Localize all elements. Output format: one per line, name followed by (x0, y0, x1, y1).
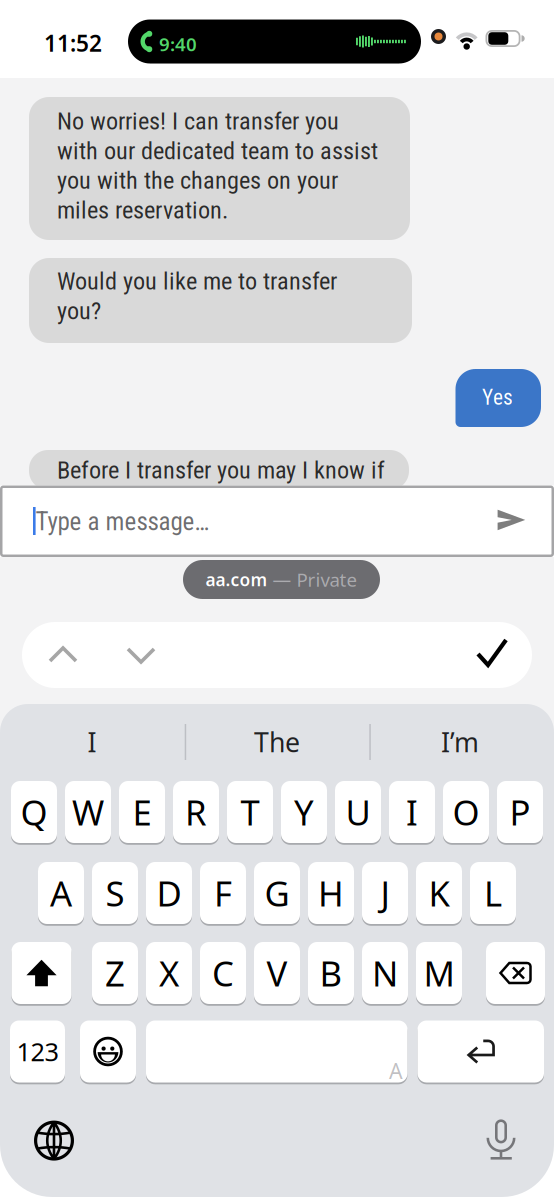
button[interactable]: A (38, 862, 84, 924)
button[interactable]: O (443, 781, 489, 843)
staticText: W (72, 789, 104, 835)
button[interactable]: W (65, 781, 111, 843)
button[interactable]: The (197, 720, 357, 764)
button[interactable]: Numbers (10, 1020, 65, 1082)
staticText: Would you like me to transfer you? (57, 267, 337, 325)
button[interactable]: V (254, 942, 300, 1004)
button[interactable]: Y (281, 781, 327, 843)
button[interactable]: G (254, 862, 300, 924)
button[interactable]: X (146, 942, 192, 1004)
staticText: — Private (267, 567, 357, 592)
button[interactable]: T (227, 781, 273, 843)
staticText: Type a message… (35, 507, 209, 536)
staticText: C (212, 950, 234, 996)
staticText: The (254, 724, 300, 760)
button[interactable]: L (470, 862, 516, 924)
staticText: aa.com (205, 568, 267, 591)
button[interactable]: C (200, 942, 246, 1004)
button[interactable]: H (308, 862, 354, 924)
staticText: M (423, 950, 454, 996)
staticText: Yes (482, 385, 513, 410)
button[interactable]: Ongoing call (128, 19, 421, 63)
button[interactable]: M (416, 942, 462, 1004)
button[interactable]: Space (146, 1020, 407, 1082)
button[interactable]: D (146, 862, 192, 924)
staticText: L (484, 870, 502, 916)
staticText: J (380, 870, 389, 916)
button[interactable]: R (173, 781, 219, 843)
button[interactable]: Shift (11, 942, 71, 1004)
button[interactable]: J (362, 862, 408, 924)
button[interactable]: Delete (486, 942, 545, 1004)
button[interactable]: B (308, 942, 354, 1004)
staticText: A (389, 1056, 403, 1085)
button[interactable]: S (92, 862, 138, 924)
staticText: R (185, 789, 207, 835)
staticText: V (266, 950, 287, 996)
button[interactable]: I (12, 720, 172, 764)
staticText: B (319, 950, 342, 996)
button[interactable]: F (200, 862, 246, 924)
staticText: F (214, 870, 232, 916)
button[interactable]: Done (478, 640, 506, 665)
staticText: S (105, 870, 124, 916)
button[interactable]: P (497, 781, 543, 843)
staticText: T (240, 789, 259, 835)
staticText: D (156, 870, 181, 916)
staticText: Before I transfer you may I know if (57, 456, 385, 484)
button[interactable]: Return (417, 1020, 544, 1082)
button[interactable]: Dictation (486, 1117, 516, 1160)
staticText: I (406, 789, 418, 835)
staticText: No worries! I can transfer you with our … (57, 107, 378, 224)
button[interactable]: K (416, 862, 462, 924)
staticText: N (372, 950, 398, 996)
staticText: Q (20, 789, 47, 835)
staticText: 9:40 (159, 31, 197, 56)
button[interactable]: Next keyboard (34, 1121, 74, 1161)
staticText: 11:52 (44, 28, 102, 58)
staticText: I (87, 724, 96, 760)
staticText: E (132, 789, 151, 835)
button[interactable]: Type a message (0, 485, 554, 557)
button[interactable]: Send (498, 510, 525, 530)
staticText: 123 (16, 1035, 58, 1068)
button[interactable]: I’m (380, 720, 540, 764)
staticText: K (428, 870, 449, 916)
button[interactable]: I (389, 781, 435, 843)
button[interactable]: Z (92, 942, 138, 1004)
staticText: O (452, 789, 479, 835)
button[interactable]: Emoji (80, 1020, 136, 1082)
staticText: H (318, 870, 344, 916)
button[interactable]: Previous field (50, 648, 76, 661)
staticText: I’m (441, 724, 479, 760)
button[interactable]: Next field (128, 649, 154, 662)
button[interactable]: E (119, 781, 165, 843)
staticText: X (159, 950, 179, 996)
staticText: P (509, 789, 530, 835)
button[interactable]: N (362, 942, 408, 1004)
staticText: A (50, 870, 72, 916)
button[interactable]: U (335, 781, 381, 843)
staticText: Y (294, 789, 314, 835)
button[interactable]: Q (11, 781, 57, 843)
staticText: G (264, 870, 289, 916)
staticText: U (345, 789, 370, 835)
staticText: Z (105, 950, 125, 996)
